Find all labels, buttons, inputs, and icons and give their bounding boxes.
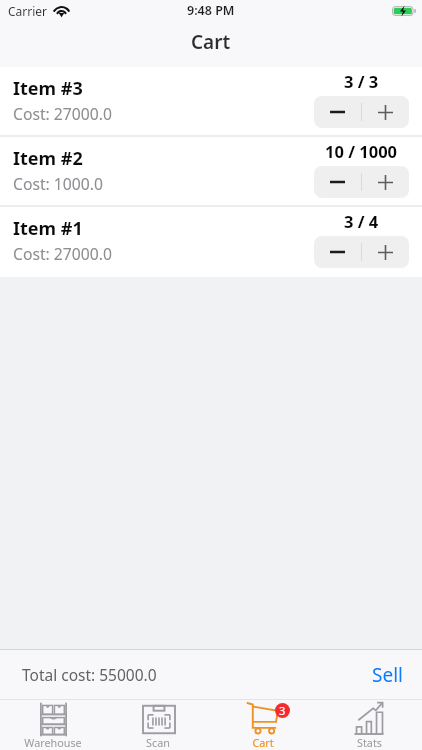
button[interactable]: Increase quantity xyxy=(362,96,409,128)
staticText: Cart xyxy=(252,735,274,750)
staticText: Item #2 xyxy=(13,146,83,171)
staticText: 9:48 PM xyxy=(187,2,235,19)
staticText: Carrier xyxy=(8,3,48,19)
staticText: Total cost: 55000.0 xyxy=(22,664,157,685)
staticText: Sell xyxy=(372,662,403,688)
button[interactable]: Item #1 xyxy=(0,207,422,277)
button[interactable]: Stats xyxy=(316,700,422,750)
staticText: Cost: 1000.0 xyxy=(13,173,103,194)
staticText: Cart xyxy=(191,29,231,55)
staticText: Cost: 27000.0 xyxy=(13,103,112,124)
staticText: 3 / 4 xyxy=(344,210,379,232)
button[interactable]: Decrease quantity xyxy=(314,96,361,128)
staticText: Scan xyxy=(146,735,170,750)
button[interactable]: Item #3 xyxy=(0,67,422,137)
staticText: Warehouse xyxy=(24,735,82,750)
button[interactable]: 3 xyxy=(210,700,316,750)
button[interactable]: Increase quantity xyxy=(362,236,409,268)
button[interactable]: Scan xyxy=(105,700,210,750)
button[interactable]: Increase quantity xyxy=(362,166,409,198)
staticText: Stats xyxy=(357,735,382,750)
staticText: Item #1 xyxy=(13,216,83,241)
button[interactable]: Sell xyxy=(348,650,422,699)
staticText: Cost: 27000.0 xyxy=(13,243,112,264)
button[interactable]: Warehouse xyxy=(0,700,105,750)
staticText: 3 xyxy=(279,703,286,718)
button[interactable]: Item #2 xyxy=(0,137,422,207)
staticText: Item #3 xyxy=(13,76,83,101)
staticText: 10 / 1000 xyxy=(325,140,398,162)
staticText: 3 / 3 xyxy=(344,70,379,92)
button[interactable]: Decrease quantity xyxy=(314,236,361,268)
button[interactable]: Decrease quantity xyxy=(314,166,361,198)
